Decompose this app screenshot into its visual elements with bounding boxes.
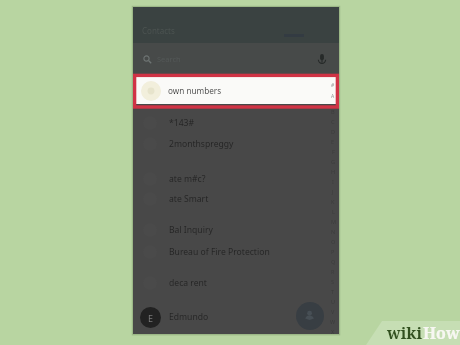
staticText: E — [148, 312, 154, 324]
staticText: How — [423, 322, 460, 344]
staticText: own numbers — [168, 85, 222, 96]
button[interactable]: Search — [133, 43, 339, 74]
staticText: B — [331, 108, 335, 115]
button[interactable]: deca rent — [133, 272, 339, 294]
button[interactable]: 2monthspreggy — [133, 133, 339, 155]
staticText: # — [331, 82, 335, 89]
button[interactable]: ate Smart — [133, 188, 339, 210]
staticText: deca rent — [169, 277, 207, 289]
staticText: J — [332, 188, 334, 195]
button[interactable]: Voice search — [317, 53, 327, 65]
button[interactable]: E — [133, 306, 339, 328]
button[interactable]: Add contact — [296, 302, 324, 330]
button[interactable]: Bal Inquiry — [133, 219, 339, 241]
staticText: Contacts — [142, 25, 175, 36]
staticText: *143# — [169, 117, 195, 129]
staticText: X — [331, 328, 335, 334]
staticText: Bal Inquiry — [169, 224, 213, 236]
staticText: 2monthspreggy — [169, 138, 234, 150]
staticText: T — [331, 288, 335, 295]
staticText: A — [331, 93, 335, 100]
staticText: ate Smart — [169, 193, 209, 205]
button[interactable]: own numbers — [133, 77, 339, 104]
staticText: Bureau of Fire Protection — [169, 246, 270, 258]
staticText: W — [330, 318, 336, 325]
button[interactable]: Bureau of Fire Protection — [133, 241, 339, 263]
button[interactable]: ate m#c? — [133, 168, 339, 190]
staticText: wiki — [387, 322, 423, 344]
staticText: Edmundo — [169, 311, 209, 323]
staticText: ate m#c? — [169, 173, 206, 185]
staticText: Search — [157, 54, 181, 64]
staticText: M — [331, 218, 336, 225]
